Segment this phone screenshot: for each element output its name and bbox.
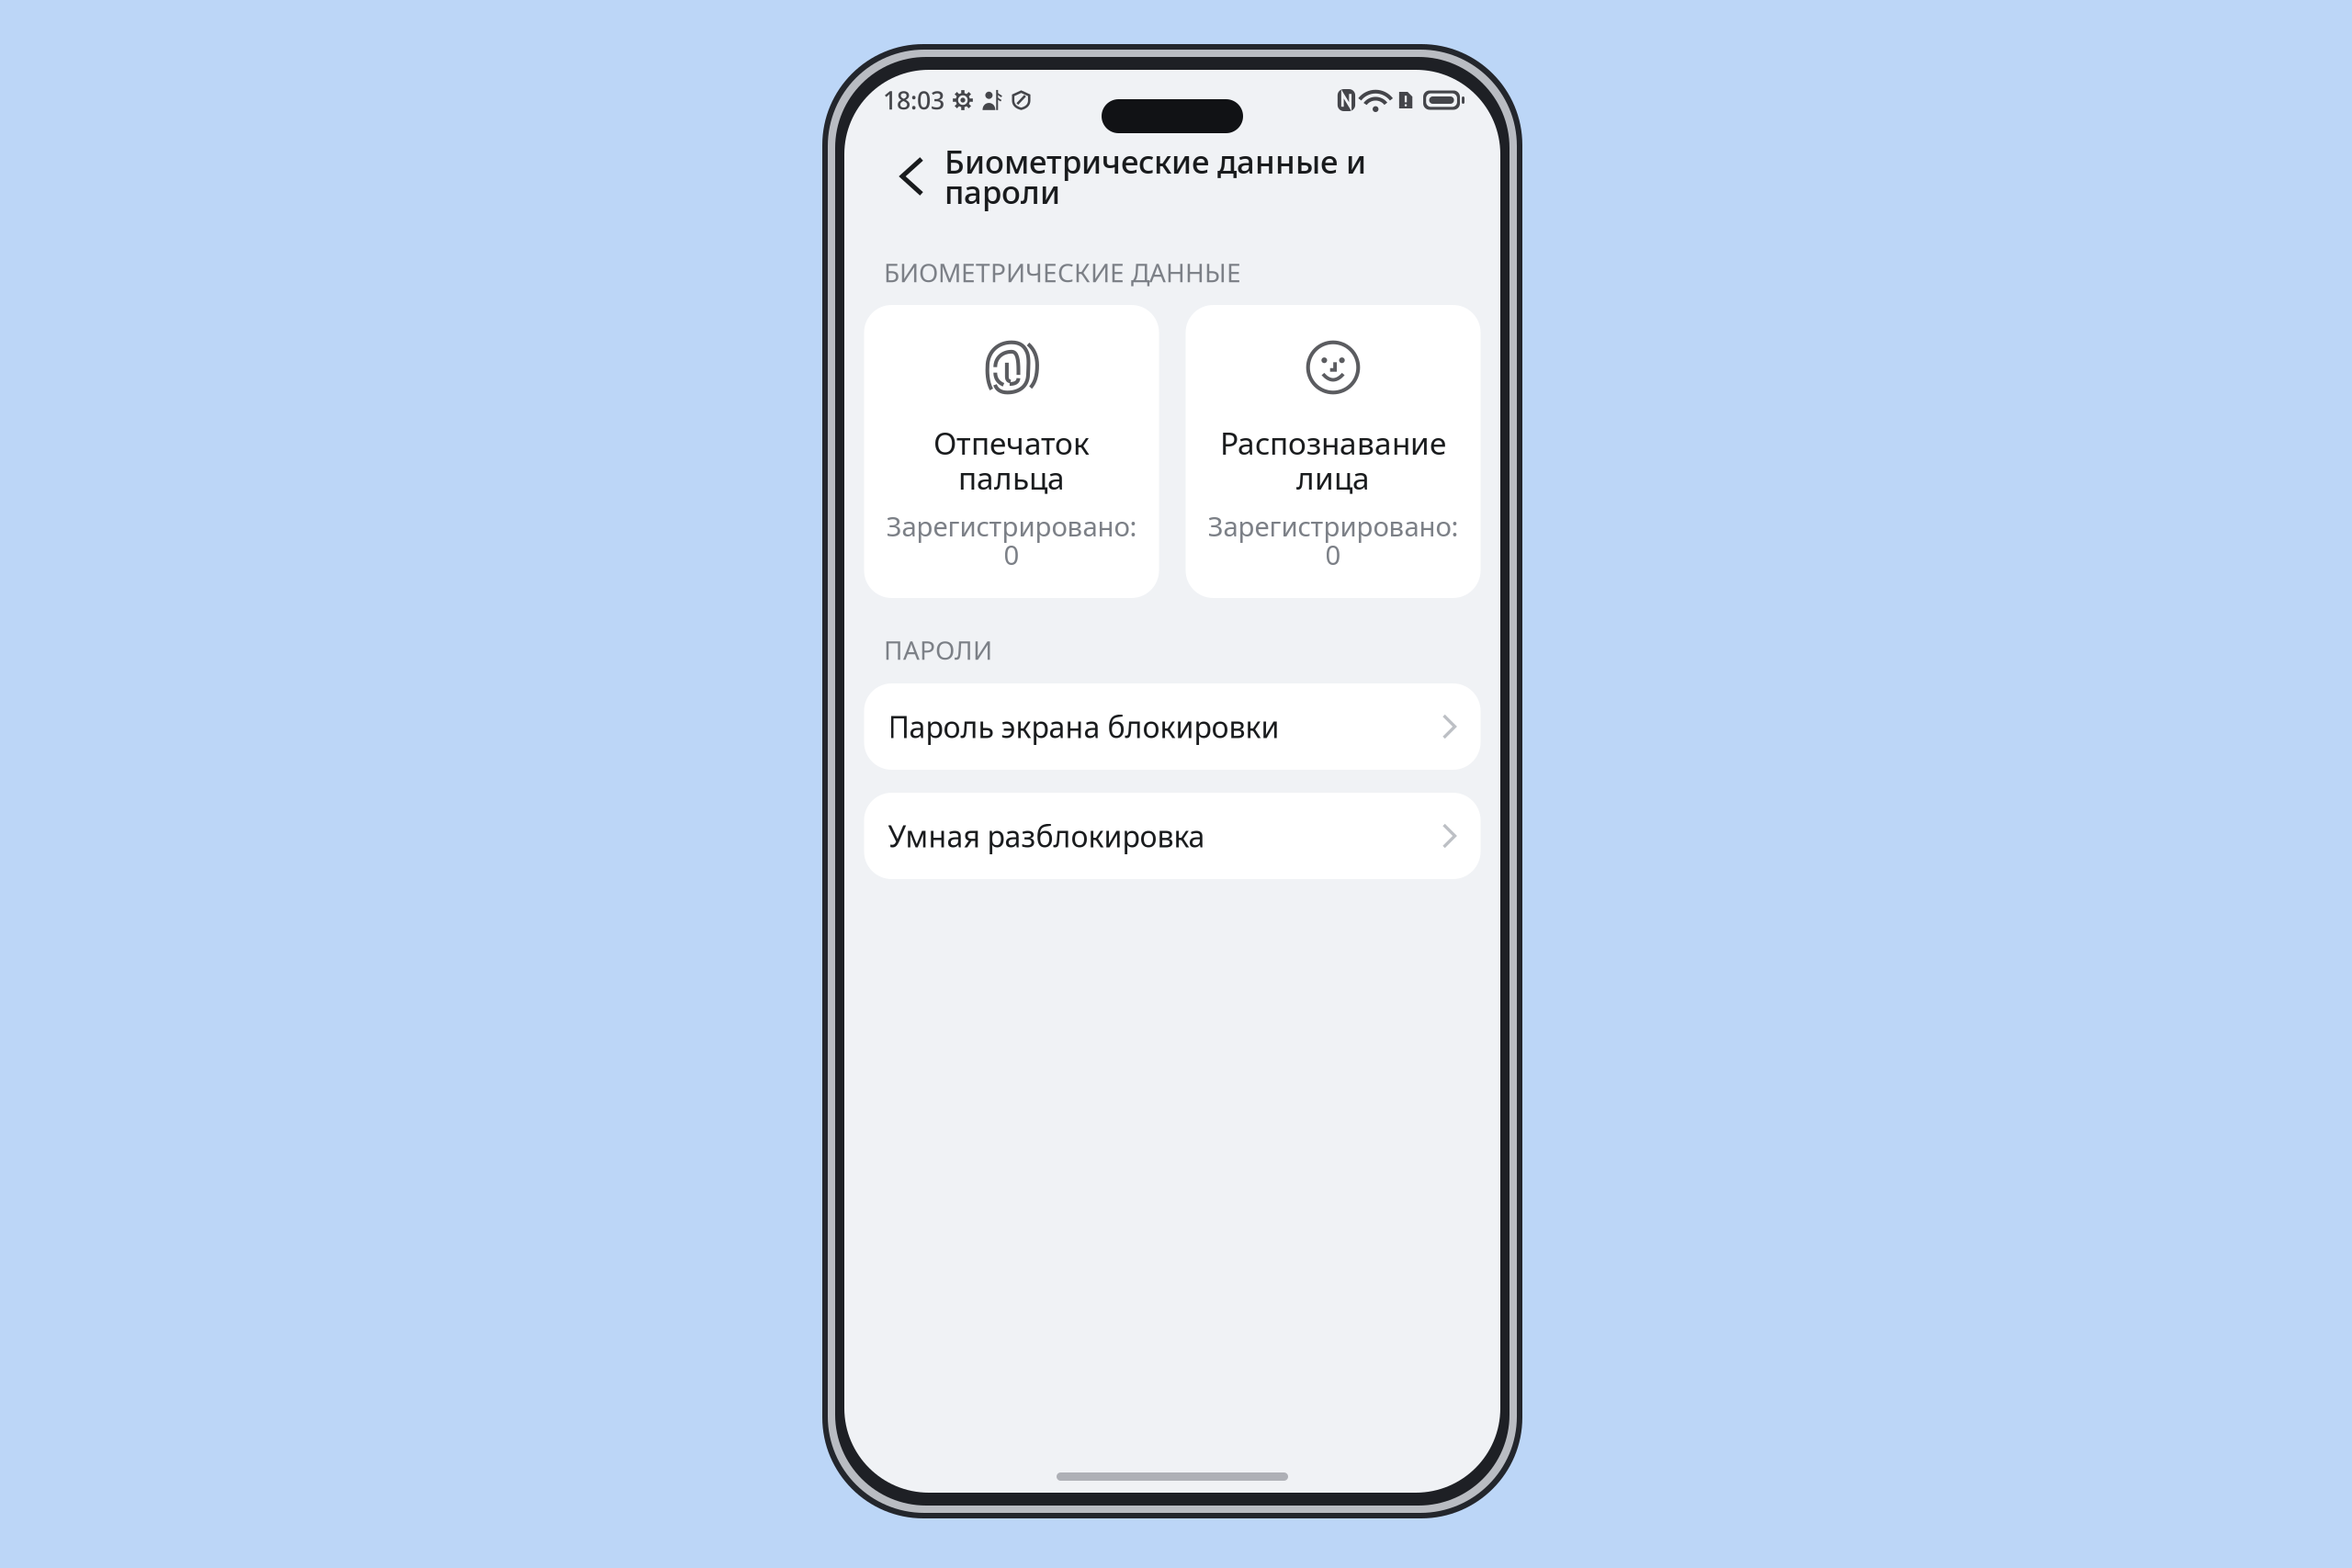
staticText: лица bbox=[1296, 457, 1370, 498]
button[interactable]: Отпечаток bbox=[864, 305, 1159, 598]
staticText: ПАРОЛИ bbox=[884, 633, 992, 667]
button[interactable]: Пароль экрана блокировки bbox=[864, 683, 1481, 770]
staticText: пароли bbox=[944, 170, 1060, 213]
staticText: Распознавание bbox=[1220, 422, 1446, 463]
staticText: пальца bbox=[958, 457, 1065, 498]
button[interactable]: Распознавание bbox=[1186, 305, 1481, 598]
staticText: Умная разблокировка bbox=[888, 816, 1205, 855]
staticText: 0 bbox=[1004, 536, 1019, 572]
staticText: Зарегистрировано: bbox=[886, 508, 1137, 544]
button[interactable]: Назад bbox=[889, 130, 934, 222]
button[interactable]: Умная разблокировка bbox=[864, 793, 1481, 879]
staticText: Биометрические данные и bbox=[944, 140, 1366, 182]
staticText: 18:03 bbox=[883, 84, 944, 116]
staticText: Отпечаток bbox=[933, 422, 1090, 463]
staticText: Пароль экрана блокировки bbox=[888, 707, 1279, 746]
staticText: 0 bbox=[1325, 536, 1341, 572]
staticText: БИОМЕТРИЧЕСКИЕ ДАННЫЕ bbox=[884, 255, 1241, 289]
staticText: Зарегистрировано: bbox=[1208, 508, 1459, 544]
